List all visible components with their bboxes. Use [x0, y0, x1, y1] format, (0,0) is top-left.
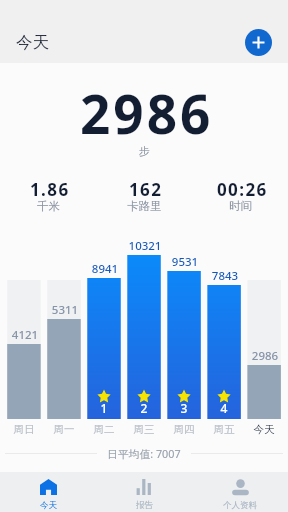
- staticText: 7843: [195, 268, 255, 284]
- staticText: 卡路里: [127, 199, 162, 213]
- staticText: 8941: [75, 261, 135, 277]
- button[interactable]: 报告: [96, 472, 192, 512]
- staticText: 2986: [80, 77, 214, 149]
- staticText: 2: [114, 400, 174, 416]
- staticText: 4121: [0, 327, 55, 343]
- staticText: 今天: [40, 500, 57, 511]
- staticText: 周日: [0, 423, 54, 436]
- staticText: 1.86: [30, 178, 70, 201]
- staticText: 162: [129, 178, 163, 201]
- staticText: 日平均值: 7007: [107, 446, 181, 461]
- staticText: 周一: [34, 423, 94, 436]
- button[interactable]: 1.86: [0, 178, 96, 215]
- button[interactable]: Add: [245, 29, 272, 56]
- staticText: 2986: [235, 348, 288, 364]
- staticText: 步: [139, 144, 150, 158]
- staticText: 个人资料: [223, 500, 257, 511]
- staticText: 周五: [194, 423, 254, 436]
- button[interactable]: 00:26: [192, 178, 288, 215]
- staticText: 10321: [115, 238, 175, 254]
- staticText: 周三: [114, 423, 174, 436]
- staticText: 千米: [37, 199, 60, 213]
- button[interactable]: 个人资料: [192, 472, 288, 512]
- staticText: 周二: [74, 423, 134, 436]
- staticText: 报告: [136, 500, 153, 511]
- staticText: 今天: [234, 423, 288, 436]
- staticText: 3: [154, 400, 214, 416]
- staticText: 周四: [154, 423, 214, 436]
- button[interactable]: 162: [96, 178, 192, 215]
- button[interactable]: 今天: [0, 472, 96, 512]
- staticText: 5311: [35, 302, 95, 318]
- staticText: 4: [194, 400, 254, 416]
- staticText: 9531: [155, 254, 215, 270]
- staticText: 00:26: [217, 178, 268, 201]
- staticText: 时间: [229, 199, 252, 213]
- staticText: 1: [74, 400, 134, 416]
- staticText: 今天: [16, 32, 49, 53]
